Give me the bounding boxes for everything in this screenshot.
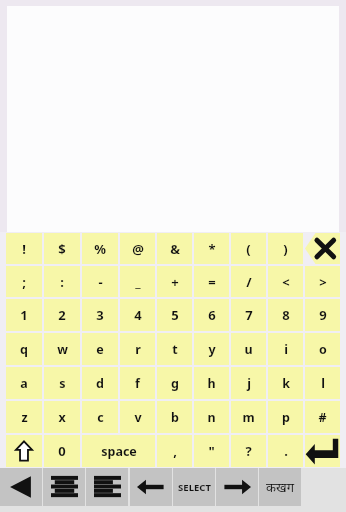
button[interactable]: # — [305, 401, 340, 433]
button[interactable]: 8 — [268, 299, 303, 331]
staticText: f — [135, 375, 140, 392]
staticText: 5 — [171, 306, 179, 324]
button[interactable]: o — [305, 333, 340, 365]
button[interactable]: e — [82, 333, 118, 365]
staticText: b — [171, 409, 179, 426]
staticText: n — [207, 409, 216, 426]
button[interactable]: / — [231, 266, 266, 297]
button[interactable]: s — [44, 367, 80, 399]
button[interactable]: j — [231, 367, 266, 399]
button[interactable]: z — [6, 401, 42, 433]
staticText: l — [321, 375, 325, 392]
staticText: # — [318, 409, 327, 426]
staticText: q — [20, 341, 28, 358]
button[interactable]: m — [231, 401, 266, 433]
staticText: : — [60, 273, 64, 291]
button[interactable]: Align center — [43, 468, 85, 506]
staticText: g — [171, 375, 179, 392]
button[interactable]: ( — [231, 233, 266, 264]
button[interactable]: k — [268, 367, 303, 399]
button[interactable]: Shift — [6, 435, 42, 467]
staticText: ! — [22, 240, 26, 258]
button[interactable]: space — [82, 435, 155, 467]
button[interactable]: c — [82, 401, 118, 433]
button[interactable]: l — [305, 367, 340, 399]
staticText: + — [171, 273, 179, 291]
button[interactable]: t — [157, 333, 192, 365]
staticText: d — [96, 375, 104, 392]
button[interactable]: 4 — [120, 299, 155, 331]
button[interactable]: & — [157, 233, 192, 264]
button[interactable]: n — [194, 401, 229, 433]
button[interactable]: x — [44, 401, 80, 433]
button[interactable]: - — [82, 266, 118, 297]
button[interactable]: , — [157, 435, 192, 467]
staticText: z — [21, 409, 28, 426]
button[interactable]: 6 — [194, 299, 229, 331]
button[interactable]: w — [44, 333, 80, 365]
button[interactable]: Previous — [130, 468, 172, 506]
button[interactable]: d — [82, 367, 118, 399]
staticText: , — [173, 442, 177, 460]
button[interactable]: कखग — [259, 468, 301, 506]
staticText: h — [207, 375, 216, 392]
button[interactable]: v — [120, 401, 155, 433]
staticText: 6 — [208, 306, 216, 324]
staticText: u — [244, 341, 253, 358]
button[interactable]: . — [268, 435, 303, 467]
staticText: s — [59, 375, 66, 392]
staticText: 1 — [20, 306, 28, 324]
button[interactable]: 2 — [44, 299, 80, 331]
staticText: 0 — [58, 442, 66, 460]
button[interactable]: % — [82, 233, 118, 264]
staticText: कखग — [266, 478, 294, 496]
staticText: e — [96, 341, 104, 358]
button[interactable]: 9 — [305, 299, 340, 331]
button[interactable]: ) — [268, 233, 303, 264]
button[interactable]: 0 — [44, 435, 80, 467]
button[interactable]: p — [268, 401, 303, 433]
button[interactable]: = — [194, 266, 229, 297]
button[interactable]: _ — [120, 266, 155, 297]
button[interactable]: ! — [6, 233, 42, 264]
button[interactable]: 3 — [82, 299, 118, 331]
button[interactable]: f — [120, 367, 155, 399]
button[interactable]: u — [231, 333, 266, 365]
button[interactable]: * — [194, 233, 229, 264]
button[interactable]: i — [268, 333, 303, 365]
button[interactable]: 5 — [157, 299, 192, 331]
button[interactable]: q — [6, 333, 42, 365]
staticText: 2 — [58, 306, 66, 324]
button[interactable]: : — [44, 266, 80, 297]
button[interactable]: g — [157, 367, 192, 399]
button[interactable]: y — [194, 333, 229, 365]
button[interactable]: Align left — [86, 468, 128, 506]
button[interactable]: 7 — [231, 299, 266, 331]
button[interactable]: a — [6, 367, 42, 399]
button[interactable]: ? — [231, 435, 266, 467]
staticText: x — [58, 409, 66, 426]
button[interactable]: " — [194, 435, 229, 467]
button[interactable]: SELECT — [173, 468, 215, 506]
button[interactable]: r — [120, 333, 155, 365]
button[interactable]: Back — [0, 468, 42, 506]
staticText: o — [319, 341, 327, 358]
staticText: . — [284, 442, 288, 460]
staticText: t — [172, 341, 178, 358]
button[interactable]: > — [305, 266, 340, 297]
button[interactable]: @ — [120, 233, 155, 264]
staticText: " — [208, 442, 215, 460]
button[interactable]: + — [157, 266, 192, 297]
button[interactable]: 1 — [6, 299, 42, 331]
button[interactable]: b — [157, 401, 192, 433]
button[interactable]: Enter — [305, 435, 340, 467]
button[interactable]: h — [194, 367, 229, 399]
staticText: < — [282, 273, 290, 291]
button[interactable]: Next — [216, 468, 258, 506]
button[interactable]: ; — [6, 266, 42, 297]
staticText: ? — [245, 442, 252, 460]
staticText: 8 — [282, 306, 290, 324]
button[interactable]: Close keyboard — [305, 233, 340, 264]
button[interactable]: $ — [44, 233, 80, 264]
button[interactable]: < — [268, 266, 303, 297]
